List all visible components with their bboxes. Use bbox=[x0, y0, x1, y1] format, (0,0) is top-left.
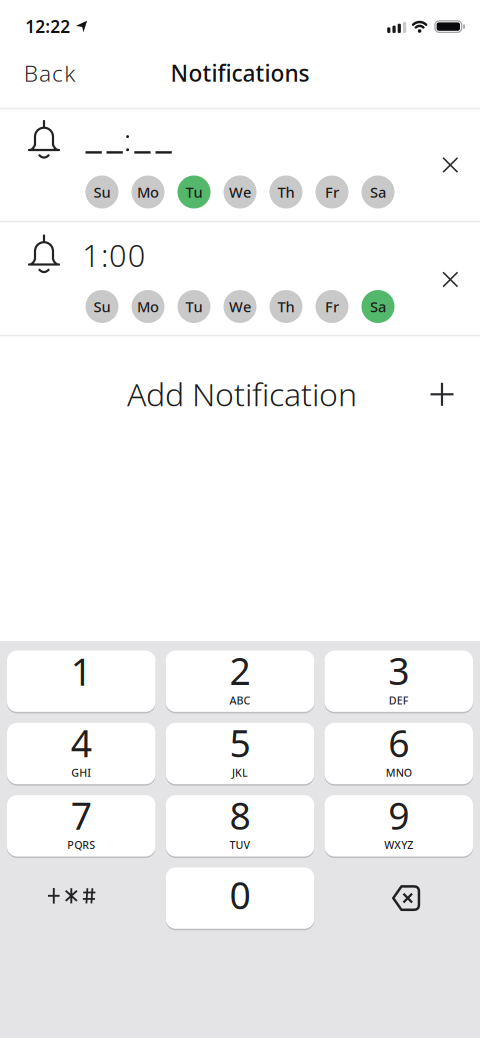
staticText: GHI bbox=[71, 765, 91, 780]
button[interactable]: We bbox=[223, 175, 256, 208]
staticText: 1 bbox=[71, 646, 92, 696]
button[interactable]: Th bbox=[269, 290, 302, 323]
staticText: WXYZ bbox=[384, 838, 413, 852]
button[interactable]: Sa bbox=[361, 175, 394, 208]
staticText: 0 bbox=[229, 870, 250, 920]
button[interactable]: Fr bbox=[315, 290, 348, 323]
staticText: We bbox=[229, 182, 251, 202]
button[interactable]: 2 bbox=[166, 651, 314, 712]
staticText: 3 bbox=[388, 646, 409, 695]
button[interactable]: Su bbox=[85, 175, 118, 208]
button[interactable]: Su bbox=[85, 290, 118, 323]
button[interactable]: 0 bbox=[166, 867, 314, 929]
staticText: Sa bbox=[370, 182, 386, 202]
staticText: JKL bbox=[232, 765, 248, 780]
staticText: We bbox=[229, 297, 251, 316]
button[interactable]: 1 bbox=[7, 651, 155, 712]
staticText: MNO bbox=[386, 765, 412, 780]
button[interactable]: We bbox=[223, 290, 256, 323]
button[interactable]: Tu bbox=[177, 175, 210, 208]
button[interactable]: Tu bbox=[177, 290, 210, 323]
staticText: 6 bbox=[388, 718, 409, 768]
button[interactable]: 9 bbox=[324, 795, 473, 856]
button[interactable]: Time bbox=[82, 235, 146, 275]
button[interactable]: Add Notification bbox=[0, 351, 480, 437]
staticText: Fr bbox=[325, 182, 339, 202]
button[interactable]: Th bbox=[269, 175, 302, 208]
button[interactable]: Time bbox=[85, 115, 173, 161]
button[interactable]: 5 bbox=[166, 723, 314, 784]
button[interactable]: 3 bbox=[324, 651, 473, 712]
staticText: Add Notification bbox=[127, 373, 357, 415]
button[interactable]: 4 bbox=[7, 723, 155, 784]
staticText: Th bbox=[277, 297, 294, 316]
button[interactable]: Sa bbox=[361, 290, 394, 323]
button[interactable]: Fr bbox=[315, 175, 348, 208]
staticText: DEF bbox=[389, 693, 409, 707]
staticText: Tu bbox=[185, 297, 202, 316]
staticText: Back bbox=[24, 58, 75, 88]
staticText: Notifications bbox=[170, 58, 309, 88]
staticText: 2 bbox=[229, 646, 250, 695]
button[interactable]: 6 bbox=[324, 723, 473, 784]
staticText: PQRS bbox=[67, 838, 95, 852]
staticText: 1:00 bbox=[82, 235, 146, 275]
staticText: Su bbox=[93, 297, 110, 316]
button[interactable]: 8 bbox=[166, 795, 314, 856]
staticText: 12:22 bbox=[25, 15, 70, 38]
staticText: 9 bbox=[388, 790, 409, 840]
button[interactable]: Back bbox=[24, 58, 75, 88]
staticText: Mo bbox=[137, 182, 159, 202]
button[interactable]: 7 bbox=[7, 795, 155, 856]
button[interactable]: Remove notification bbox=[433, 262, 467, 296]
button[interactable]: Mo bbox=[131, 290, 164, 323]
staticText: 8 bbox=[229, 790, 250, 840]
staticText: Mo bbox=[137, 297, 159, 316]
staticText: Fr bbox=[325, 297, 339, 316]
staticText: TUV bbox=[229, 838, 250, 852]
staticText: 5 bbox=[229, 718, 250, 768]
button[interactable]: Delete bbox=[332, 867, 480, 929]
staticText: ABC bbox=[229, 693, 250, 707]
staticText: 7 bbox=[71, 790, 92, 840]
staticText: Su bbox=[93, 182, 110, 202]
staticText: Tu bbox=[185, 182, 202, 202]
button[interactable]: Mo bbox=[131, 175, 164, 208]
button[interactable]: Symbols bbox=[0, 867, 146, 929]
button[interactable]: Remove notification bbox=[433, 148, 467, 182]
staticText: Sa bbox=[370, 297, 386, 316]
staticText: 4 bbox=[71, 718, 92, 768]
staticText: Th bbox=[277, 182, 294, 202]
